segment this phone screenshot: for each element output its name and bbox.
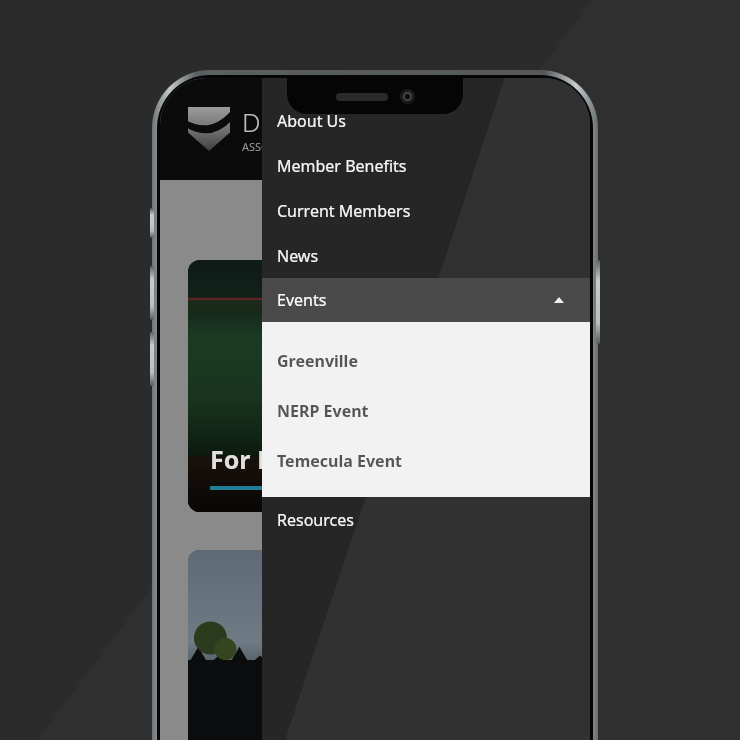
button[interactable]: News xyxy=(262,233,590,278)
button[interactable]: Greenville xyxy=(262,336,590,386)
staticText: Temecula Event xyxy=(277,450,402,472)
staticText: Current Members xyxy=(277,200,411,222)
button[interactable]: Current Members xyxy=(262,188,590,233)
staticText: Greenville xyxy=(277,350,358,372)
other: Collapse Events xyxy=(550,291,568,309)
button[interactable]: NERP Event xyxy=(262,386,590,436)
button[interactable]: Member Benefits xyxy=(262,143,590,188)
button[interactable]: For Members xyxy=(188,260,562,512)
staticText: News xyxy=(277,245,319,267)
button[interactable]: About Us xyxy=(262,98,590,143)
staticText: About Us xyxy=(277,110,346,132)
button[interactable] xyxy=(188,550,562,740)
button[interactable]: Events xyxy=(262,278,590,322)
staticText: Events xyxy=(277,289,327,311)
staticText: ASSOCIATION xyxy=(242,139,314,154)
staticText: Resources xyxy=(277,509,354,531)
staticText: NERP Event xyxy=(277,400,369,422)
staticText: Member Benefits xyxy=(277,155,407,177)
button[interactable]: Resources xyxy=(262,497,590,542)
staticText: For Members xyxy=(210,442,375,476)
button[interactable]: Temecula Event xyxy=(262,436,590,486)
staticText: DEA xyxy=(242,104,291,139)
